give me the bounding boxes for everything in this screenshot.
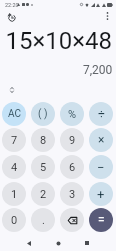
- staticText: 5: [40, 161, 47, 174]
- button[interactable]: 8: [31, 128, 55, 152]
- button[interactable]: ÷: [89, 102, 113, 126]
- button[interactable]: %: [60, 102, 84, 126]
- staticText: 2: [40, 188, 47, 201]
- staticText: 3: [69, 188, 76, 201]
- button[interactable]: 3: [60, 182, 84, 206]
- button[interactable]: .: [31, 208, 55, 232]
- staticText: AC: [8, 108, 21, 120]
- button[interactable]: +: [89, 182, 113, 206]
- button[interactable]: 1: [2, 182, 26, 206]
- button[interactable]: −: [89, 155, 113, 179]
- staticText: 6: [69, 161, 76, 174]
- staticText: 7,200: [83, 63, 113, 77]
- staticText: ( ): [38, 108, 48, 120]
- button[interactable]: 4: [2, 155, 26, 179]
- button[interactable]: 5: [31, 155, 55, 179]
- staticText: 15×10×48: [5, 27, 112, 53]
- button[interactable]: Delete: [60, 208, 84, 232]
- button[interactable]: AC: [2, 102, 26, 126]
- staticText: 9: [69, 134, 76, 147]
- button[interactable]: 0: [2, 208, 26, 232]
- button[interactable]: 2: [31, 182, 55, 206]
- staticText: ×: [98, 133, 105, 147]
- button[interactable]: More options: [98, 7, 116, 25]
- staticText: %: [68, 108, 77, 121]
- button[interactable]: ( ): [31, 102, 55, 126]
- staticText: 22:20: [5, 2, 19, 8]
- button[interactable]: History: [3, 9, 21, 27]
- staticText: 8: [40, 134, 47, 147]
- button[interactable]: 6: [60, 155, 84, 179]
- button[interactable]: =: [89, 208, 113, 232]
- staticText: −: [97, 160, 105, 175]
- button[interactable]: ×: [89, 128, 113, 152]
- staticText: =: [98, 213, 105, 227]
- button[interactable]: 7: [2, 128, 26, 152]
- staticText: +: [97, 187, 105, 202]
- button[interactable]: 9: [60, 128, 84, 152]
- staticText: 7: [11, 134, 18, 147]
- button[interactable]: Home: [51, 236, 65, 250]
- staticText: 1: [11, 188, 18, 201]
- button[interactable]: Recents: [80, 236, 94, 250]
- staticText: 4: [11, 161, 18, 174]
- staticText: ÷: [98, 107, 105, 121]
- button[interactable]: Expand history: [4, 82, 20, 98]
- staticText: .: [42, 214, 45, 227]
- staticText: 0: [11, 214, 18, 227]
- button[interactable]: Back: [22, 236, 36, 250]
